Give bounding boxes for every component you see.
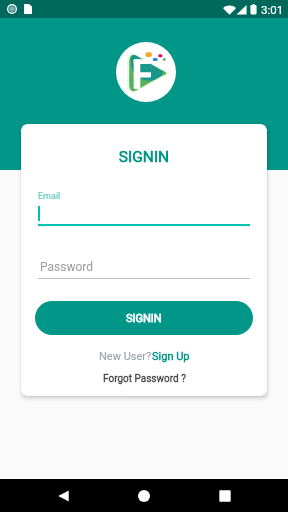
staticText: SIGNIN [126, 312, 162, 325]
button[interactable]: Forgot Password ? [21, 373, 267, 385]
staticText: Forgot Password ? [103, 373, 186, 385]
staticText: Email [38, 191, 61, 202]
staticText: Sign Up [152, 350, 190, 363]
staticText: Password [40, 260, 94, 274]
button[interactable]: Sign Up [152, 350, 190, 363]
button[interactable]: SIGNIN [35, 301, 253, 335]
button[interactable]: Back [43, 479, 83, 512]
staticText: 3:01 [261, 3, 284, 16]
button[interactable]: Recents [205, 479, 245, 512]
staticText: New User? [99, 350, 152, 363]
staticText: SIGNIN [21, 148, 267, 166]
button[interactable]: Home [124, 479, 164, 512]
